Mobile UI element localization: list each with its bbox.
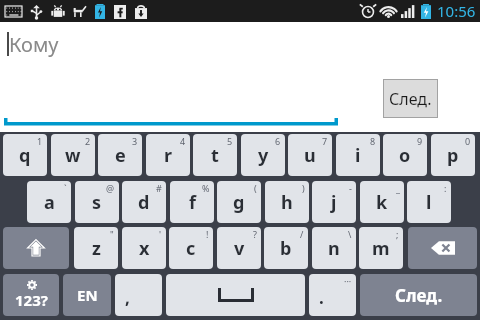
button[interactable]: ! xyxy=(169,227,213,269)
button[interactable]: % xyxy=(170,181,214,223)
button[interactable]: 9 xyxy=(383,134,427,176)
staticText: _ xyxy=(396,182,400,194)
button[interactable]: , xyxy=(115,274,162,316)
button[interactable]: @ xyxy=(75,181,119,223)
staticText: k xyxy=(376,190,388,215)
staticText: 7 xyxy=(322,135,328,147)
staticText: ' xyxy=(159,228,162,240)
staticText: EN xyxy=(77,285,98,305)
staticText: След. xyxy=(395,284,443,307)
staticText: 0 xyxy=(465,135,471,147)
button[interactable]: 5 xyxy=(193,134,237,176)
staticText: ) xyxy=(302,182,305,194)
staticText: g xyxy=(233,190,245,215)
button[interactable]: ··· xyxy=(309,274,356,316)
button[interactable]: 4 xyxy=(146,134,190,176)
staticText: # xyxy=(156,182,162,194)
staticText: 4 xyxy=(180,135,186,147)
staticText: j xyxy=(331,190,337,215)
button[interactable]: След. xyxy=(383,79,438,118)
staticText: m xyxy=(372,236,390,261)
staticText: ` xyxy=(64,182,67,194)
button[interactable]: 6 xyxy=(241,134,285,176)
button[interactable]: ? xyxy=(217,227,261,269)
staticText: h xyxy=(281,190,293,215)
staticText: % xyxy=(202,182,210,194)
staticText: . xyxy=(319,286,324,309)
button[interactable]: 8 xyxy=(336,134,380,176)
button[interactable]: 7 xyxy=(288,134,332,176)
staticText: s xyxy=(92,190,102,215)
button[interactable]: 0 xyxy=(431,134,475,176)
button[interactable]: 3 xyxy=(98,134,142,176)
button[interactable]: \ xyxy=(312,227,356,269)
staticText: ··· xyxy=(344,275,352,287)
button[interactable]: ; xyxy=(359,227,403,269)
button[interactable]: ' xyxy=(122,227,166,269)
staticText: ( xyxy=(254,182,257,194)
staticText: 10:56 xyxy=(437,1,476,21)
button[interactable]: _ xyxy=(360,181,404,223)
staticText: l xyxy=(426,190,432,215)
staticText: t xyxy=(211,143,219,168)
staticText: - xyxy=(349,182,352,194)
staticText: 8 xyxy=(370,135,376,147)
staticText: w xyxy=(65,143,81,168)
staticText: u xyxy=(304,143,316,168)
staticText: След. xyxy=(389,88,432,110)
staticText: \ xyxy=(348,228,352,240)
staticText: c xyxy=(186,236,196,261)
button[interactable]: 1 xyxy=(3,134,47,176)
staticText: f xyxy=(189,190,196,215)
staticText: o xyxy=(399,143,411,168)
staticText: p xyxy=(447,143,459,168)
staticText: b xyxy=(280,236,292,261)
staticText: / xyxy=(300,228,304,240)
staticText: v xyxy=(234,236,245,261)
staticText: 1 xyxy=(37,135,43,147)
button[interactable]: : xyxy=(407,181,451,223)
staticText: " xyxy=(110,228,114,240)
button[interactable]: # xyxy=(122,181,166,223)
staticText: , xyxy=(125,286,130,309)
staticText: Кому xyxy=(9,31,59,58)
button[interactable]: ` xyxy=(27,181,71,223)
staticText: 5 xyxy=(227,135,233,147)
staticText: 123? xyxy=(15,290,48,310)
staticText: 9 xyxy=(417,135,423,147)
button[interactable]: 2 xyxy=(51,134,95,176)
staticText: d xyxy=(138,190,150,215)
staticText: q xyxy=(19,143,31,168)
staticText: ! xyxy=(206,228,209,240)
staticText: i xyxy=(355,143,361,168)
staticText: : xyxy=(444,182,447,194)
button[interactable]: ( xyxy=(217,181,261,223)
staticText: r xyxy=(164,143,173,168)
staticText: @ xyxy=(106,182,115,194)
button[interactable]: ) xyxy=(265,181,309,223)
staticText: a xyxy=(44,190,55,215)
button[interactable]: След. xyxy=(360,274,477,316)
staticText: 3 xyxy=(132,135,138,147)
staticText: n xyxy=(328,236,340,261)
button[interactable]: Shift xyxy=(3,227,69,269)
staticText: y xyxy=(258,143,269,168)
button[interactable]: EN xyxy=(63,274,111,316)
staticText: z xyxy=(92,236,101,261)
button[interactable]: / xyxy=(264,227,308,269)
staticText: 6 xyxy=(275,135,281,147)
button[interactable]: Symbols xyxy=(3,274,59,316)
staticText: ? xyxy=(253,228,257,240)
button[interactable]: Space xyxy=(166,274,305,316)
button[interactable]: Backspace xyxy=(408,227,477,269)
staticText: e xyxy=(115,143,126,168)
button[interactable]: - xyxy=(312,181,356,223)
staticText: 2 xyxy=(85,135,91,147)
staticText: x xyxy=(139,236,150,261)
button[interactable]: " xyxy=(74,227,118,269)
staticText: ; xyxy=(396,228,399,240)
